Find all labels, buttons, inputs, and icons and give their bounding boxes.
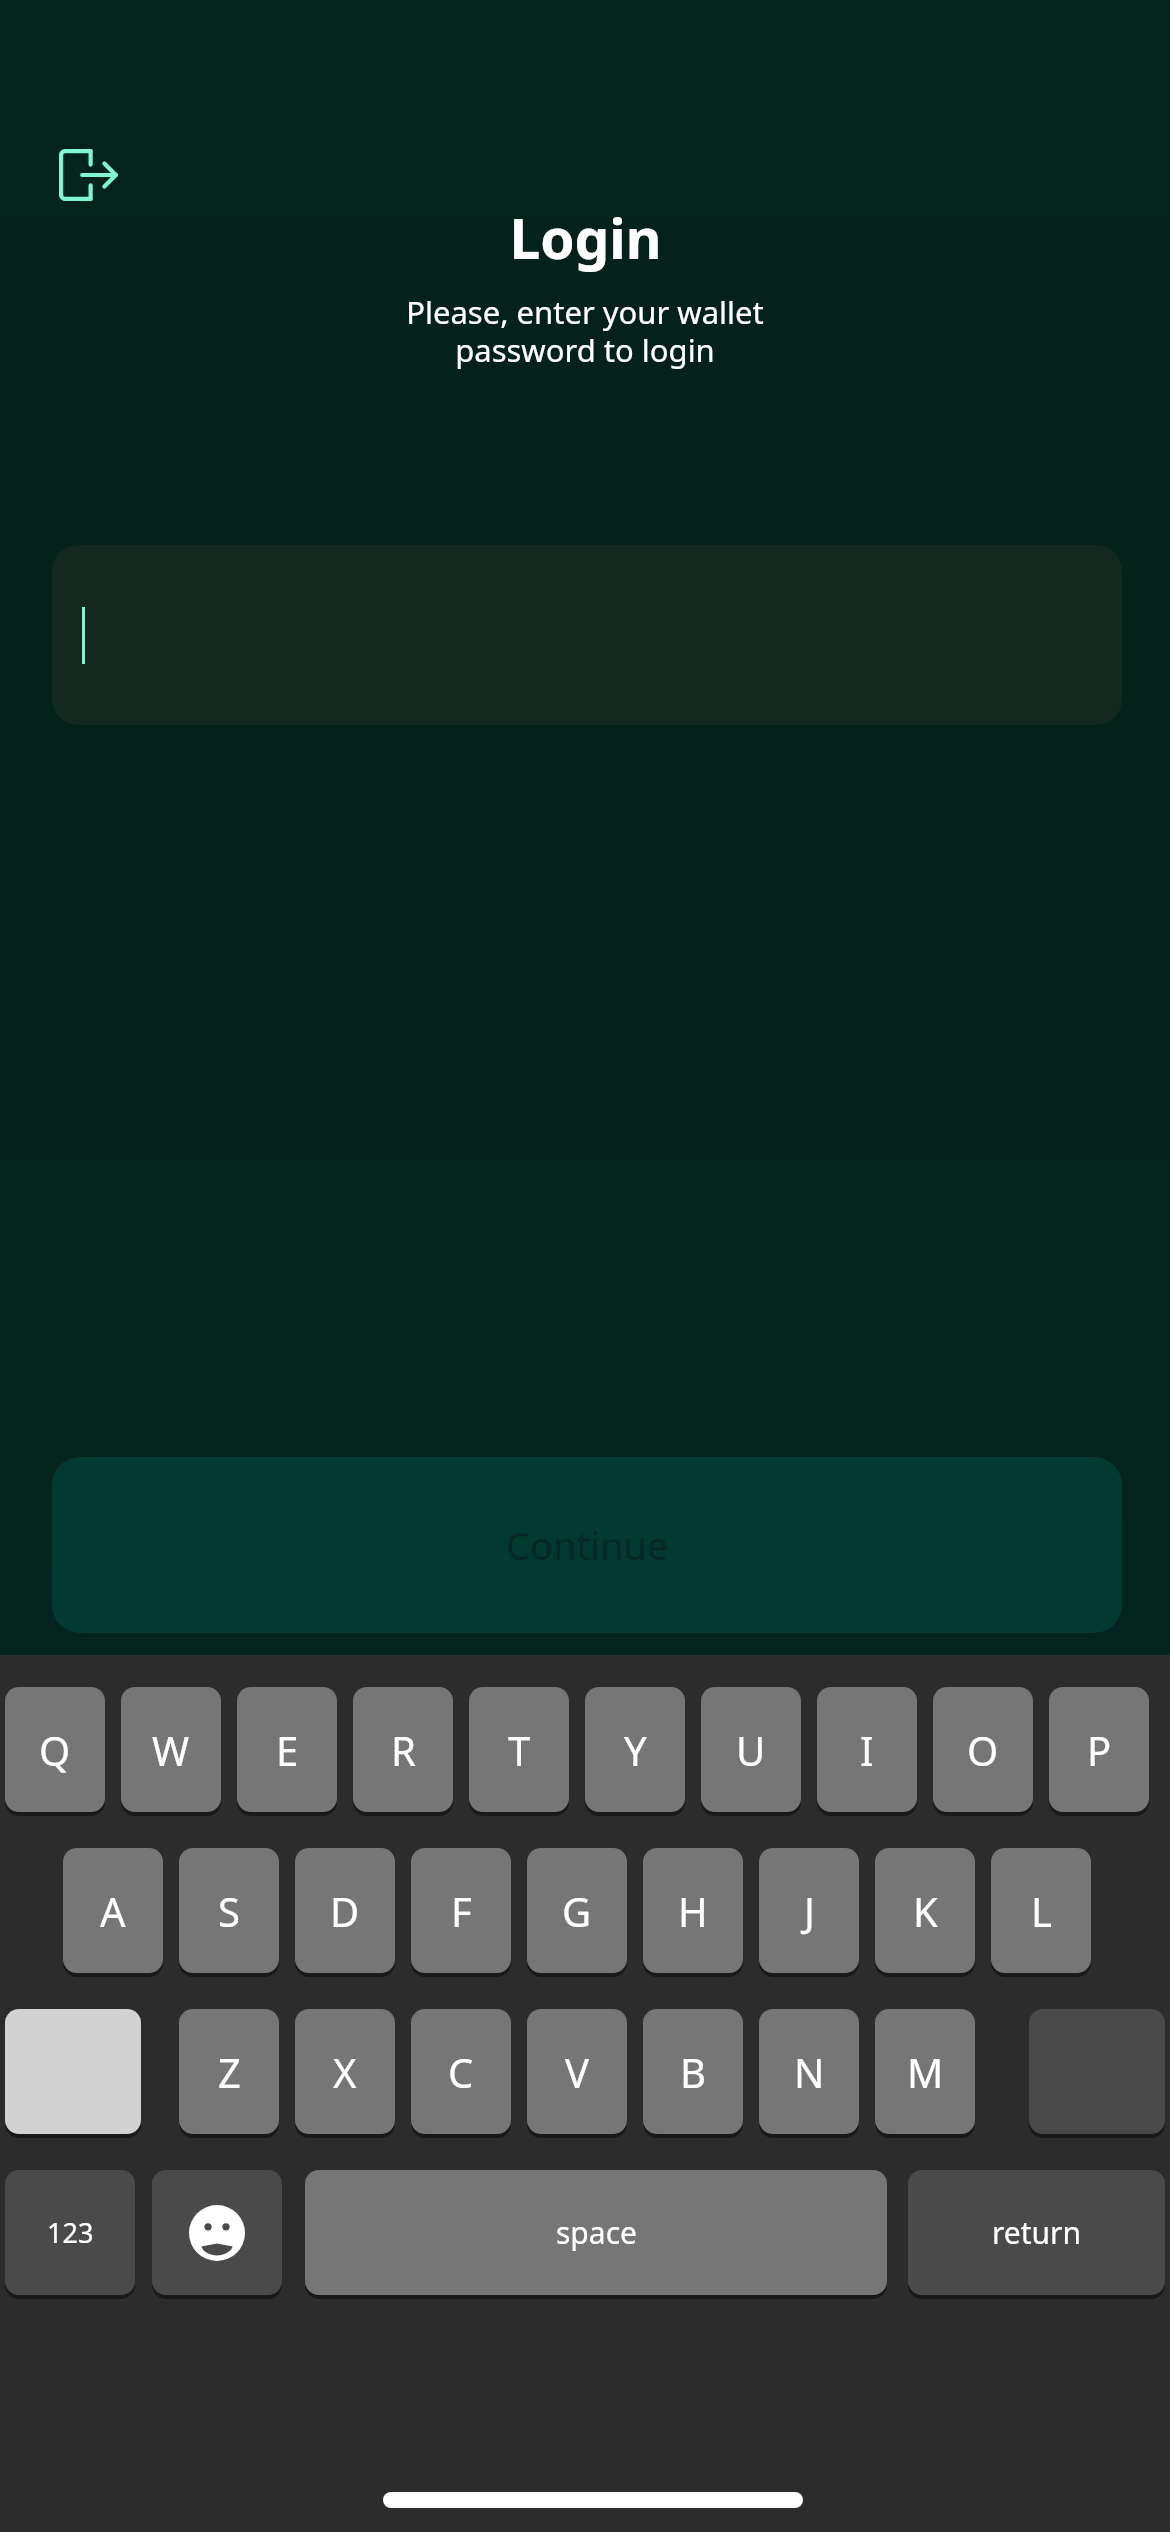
staticText: K	[913, 1884, 938, 1938]
button[interactable]: C	[411, 2009, 511, 2134]
staticText: H	[678, 1884, 708, 1938]
button[interactable]: L	[991, 1848, 1091, 1973]
staticText: space	[556, 2212, 637, 2253]
staticText: B	[680, 2045, 706, 2099]
staticText: return	[992, 2212, 1082, 2253]
button[interactable]: F	[411, 1848, 511, 1973]
button[interactable]: X	[295, 2009, 395, 2134]
button[interactable]: Backspace	[1029, 2009, 1165, 2134]
button[interactable]: 123	[5, 2170, 135, 2295]
button[interactable]: Z	[179, 2009, 279, 2134]
staticText: J	[804, 1884, 815, 1938]
staticText: W	[152, 1723, 190, 1777]
button[interactable]: T	[469, 1687, 569, 1812]
staticText: S	[218, 1884, 240, 1938]
staticText: D	[330, 1884, 360, 1938]
button[interactable]	[52, 545, 1122, 725]
staticText: V	[565, 2045, 589, 2099]
button[interactable]: N	[759, 2009, 859, 2134]
staticText: Continue	[506, 1519, 669, 1571]
staticText: M	[907, 2045, 944, 2099]
staticText: O	[967, 1723, 999, 1777]
staticText: G	[562, 1884, 592, 1938]
button[interactable]: U	[701, 1687, 801, 1812]
staticText: Z	[218, 2045, 241, 2099]
staticText: X	[333, 2045, 357, 2099]
staticText: L	[1031, 1884, 1052, 1938]
staticText: E	[276, 1723, 299, 1777]
staticText: Q	[39, 1723, 71, 1777]
button[interactable]: B	[643, 2009, 743, 2134]
staticText: I	[860, 1723, 874, 1777]
button[interactable]: Q	[5, 1687, 105, 1812]
button[interactable]: Emoji	[152, 2170, 282, 2295]
staticText: C	[448, 2045, 474, 2099]
staticText: 123	[47, 2214, 94, 2251]
staticText: Y	[624, 1723, 647, 1777]
button[interactable]: Log out	[42, 132, 134, 218]
button[interactable]: Shift	[5, 2009, 141, 2134]
button[interactable]: return	[908, 2170, 1165, 2295]
staticText: Please, enter your wallet password to lo…	[406, 291, 764, 371]
button[interactable]: V	[527, 2009, 627, 2134]
button[interactable]: K	[875, 1848, 975, 1973]
button[interactable]: A	[63, 1848, 163, 1973]
button[interactable]: O	[933, 1687, 1033, 1812]
staticText: N	[794, 2045, 825, 2099]
staticText: P	[1087, 1723, 1112, 1777]
staticText: Login	[509, 200, 662, 275]
button[interactable]: S	[179, 1848, 279, 1973]
button[interactable]: Y	[585, 1687, 685, 1812]
button[interactable]: P	[1049, 1687, 1149, 1812]
button[interactable]: I	[817, 1687, 917, 1812]
button[interactable]: D	[295, 1848, 395, 1973]
staticText: A	[100, 1884, 126, 1938]
staticText: R	[391, 1723, 416, 1777]
button[interactable]: W	[121, 1687, 221, 1812]
button[interactable]: G	[527, 1848, 627, 1973]
staticText: F	[451, 1884, 472, 1938]
staticText: U	[736, 1723, 766, 1777]
button[interactable]: M	[875, 2009, 975, 2134]
button[interactable]: space	[305, 2170, 887, 2295]
button[interactable]: H	[643, 1848, 743, 1973]
button[interactable]: E	[237, 1687, 337, 1812]
staticText: T	[508, 1723, 531, 1777]
button[interactable]: J	[759, 1848, 859, 1973]
button[interactable]: R	[353, 1687, 453, 1812]
